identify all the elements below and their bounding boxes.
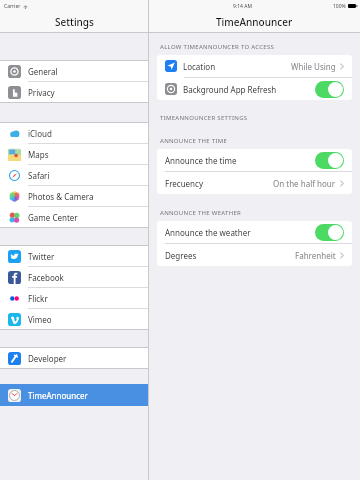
button[interactable]: Developer: [0, 348, 148, 368]
staticText: 100%: [333, 3, 346, 10]
staticText: Safari: [28, 170, 50, 181]
staticText: ANNOUNCE THE TIME: [160, 137, 228, 145]
button[interactable]: Safari: [0, 165, 148, 185]
staticText: Maps: [28, 149, 49, 160]
staticText: TIMEANNOUNCER SETTINGS: [160, 114, 248, 122]
button[interactable]: Photos & Camera: [0, 186, 148, 206]
button[interactable]: Announce the weather switch: [315, 224, 344, 241]
staticText: Carrier: [4, 3, 21, 10]
staticText: Location: [183, 61, 216, 72]
staticText: While Using: [291, 61, 336, 72]
button[interactable]: Privacy: [0, 82, 148, 102]
staticText: ANNOUNCE THE WEATHER: [160, 209, 242, 217]
staticText: Photos & Camera: [28, 191, 94, 202]
button[interactable]: Twitter: [0, 246, 148, 266]
staticText: Vimeo: [28, 314, 52, 325]
button[interactable]: Game Center: [0, 207, 148, 227]
staticText: Twitter: [28, 251, 55, 262]
button[interactable]: Degrees: [157, 244, 352, 266]
staticText: Announce the time: [165, 155, 237, 166]
staticText: Fahrenheit: [295, 250, 336, 261]
staticText: Flickr: [28, 293, 48, 304]
button[interactable]: Announce the time switch: [315, 152, 344, 169]
button[interactable]: Vimeo: [0, 309, 148, 329]
staticText: Facebook: [28, 272, 64, 283]
button[interactable]: Background App Refresh switch: [315, 81, 344, 98]
staticText: 9:14 AM: [233, 3, 252, 10]
staticText: iCloud: [28, 128, 52, 139]
staticText: Announce the weather: [165, 227, 251, 238]
staticText: On the half hour: [273, 178, 336, 189]
staticText: Settings: [55, 15, 94, 29]
button[interactable]: General: [0, 61, 148, 81]
staticText: Developer: [28, 353, 67, 364]
staticText: Background App Refresh: [183, 84, 277, 95]
button[interactable]: Flickr: [0, 288, 148, 308]
staticText: ALLOW TIMEANNOUNCER TO ACCESS: [160, 43, 275, 51]
staticText: Frecuency: [165, 178, 203, 189]
button[interactable]: Location: [157, 55, 352, 77]
button[interactable]: Facebook: [0, 267, 148, 287]
button[interactable]: Announce the time: [157, 149, 352, 171]
button[interactable]: Background App Refresh: [157, 78, 352, 100]
staticText: TimeAnnouncer: [28, 390, 88, 401]
staticText: General: [28, 66, 58, 77]
button[interactable]: Announce the weather: [157, 221, 352, 243]
staticText: TimeAnnouncer: [216, 15, 293, 29]
staticText: Game Center: [28, 212, 78, 223]
button[interactable]: Maps: [0, 144, 148, 164]
staticText: Privacy: [28, 87, 55, 98]
staticText: Degrees: [165, 250, 197, 261]
button[interactable]: iCloud: [0, 123, 148, 143]
button[interactable]: Frecuency: [157, 172, 352, 194]
button[interactable]: TimeAnnouncer: [0, 385, 148, 405]
